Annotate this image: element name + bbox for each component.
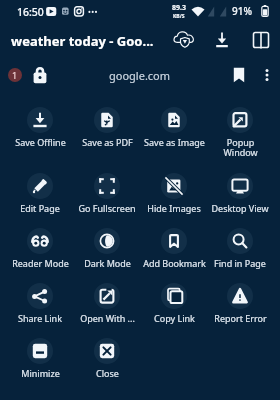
- button[interactable]: Secure connection: [28, 63, 52, 87]
- button[interactable]: google.com: [100, 63, 180, 87]
- staticText: KB/S: [173, 13, 185, 20]
- button[interactable]: Open With ...: [74, 283, 140, 333]
- staticText: Go Fullscreen: [78, 202, 136, 214]
- staticText: Dark Mode: [84, 257, 131, 269]
- button[interactable]: Download: [210, 28, 234, 52]
- button[interactable]: Add Bookmark: [141, 228, 207, 278]
- button[interactable]: Minimize: [7, 338, 73, 388]
- staticText: 16:50: [17, 5, 44, 19]
- button[interactable]: Bookmarks: [227, 63, 251, 87]
- staticText: google.com: [109, 68, 171, 83]
- button[interactable]: Desktop View: [207, 173, 273, 223]
- staticText: Save as Image: [144, 136, 205, 148]
- staticText: Open With ...: [80, 312, 135, 324]
- staticText: Close: [96, 367, 119, 379]
- button[interactable]: More options: [255, 63, 279, 87]
- staticText: Find in Page: [214, 257, 266, 269]
- button[interactable]: Share Link: [7, 283, 73, 333]
- button[interactable]: Popup Window: [207, 107, 273, 157]
- button[interactable]: Close: [74, 338, 140, 388]
- staticText: Copy Link: [154, 312, 195, 324]
- staticText: Popup Window: [223, 136, 258, 157]
- staticText: Reader Mode: [12, 257, 69, 269]
- staticText: 89.3: [172, 3, 186, 13]
- staticText: Save as PDF: [82, 136, 133, 148]
- staticText: Report Error: [214, 312, 267, 324]
- button[interactable]: Tabs: 1: [8, 68, 22, 82]
- staticText: Desktop View: [211, 202, 269, 214]
- button[interactable]: Report Error: [207, 283, 273, 333]
- button[interactable]: Save as PDF: [74, 107, 140, 157]
- staticText: weather today - Goo...: [11, 32, 154, 50]
- button[interactable]: Save Offline: [7, 107, 73, 157]
- staticText: 91%: [232, 4, 252, 18]
- button[interactable]: Find in Page: [207, 228, 273, 278]
- button[interactable]: Copy Link: [141, 283, 207, 333]
- button[interactable]: Dark Mode: [74, 228, 140, 278]
- staticText: Hide Images: [147, 202, 201, 214]
- button[interactable]: Cloud backup: [173, 28, 197, 52]
- button[interactable]: Hide Images: [141, 173, 207, 223]
- staticText: Minimize: [21, 367, 60, 379]
- staticText: Share Link: [18, 312, 62, 324]
- staticText: 1: [12, 69, 18, 81]
- staticText: Edit Page: [20, 202, 60, 214]
- button[interactable]: Save as Image: [141, 107, 207, 157]
- staticText: Save Offline: [15, 136, 66, 148]
- button[interactable]: Go Fullscreen: [74, 173, 140, 223]
- button[interactable]: Tabs: [249, 28, 273, 52]
- button[interactable]: Edit Page: [7, 173, 73, 223]
- button[interactable]: Reader Mode: [7, 228, 73, 278]
- staticText: Add Bookmark: [143, 257, 206, 269]
